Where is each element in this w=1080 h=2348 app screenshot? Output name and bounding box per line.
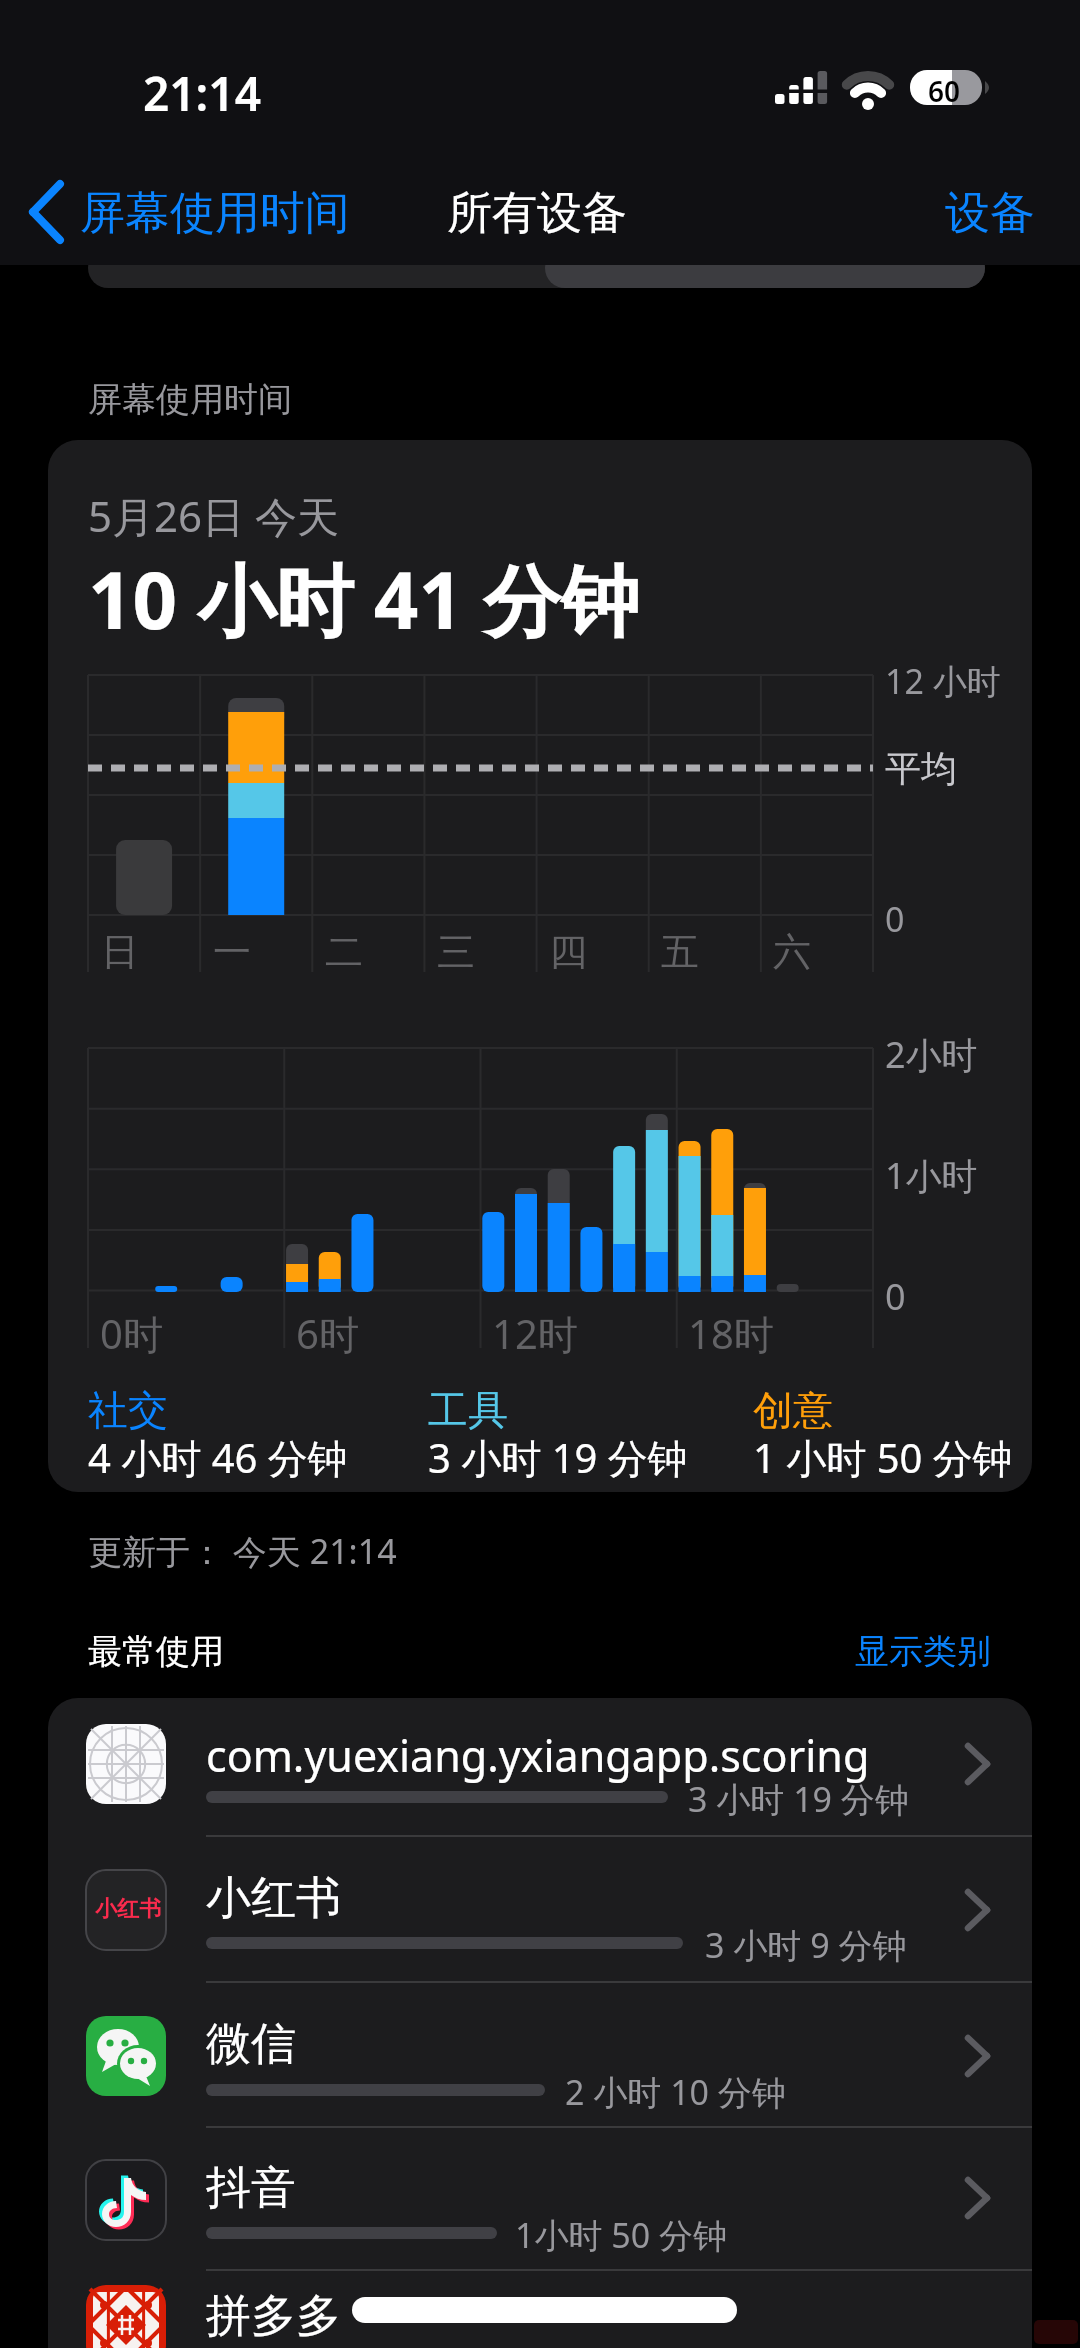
staticText: 12时 (492, 1306, 578, 1361)
button[interactable] (840, 1615, 1000, 1679)
staticText: 10 小时 41 分钟 (88, 546, 640, 653)
button[interactable] (930, 170, 1050, 250)
staticText: 小红书 (206, 1870, 341, 1927)
staticText: 5月26日 今天 (88, 487, 339, 544)
staticText: 屏幕使用时间 (80, 185, 350, 242)
staticText: 2 小时 10 分钟 (565, 2069, 786, 2115)
staticText: com.yuexiang.yxiangapp.scoring (206, 1726, 870, 1785)
staticText: 21:14 (143, 62, 261, 125)
staticText: 抖音 (206, 2160, 296, 2217)
staticText: 二 (325, 928, 363, 976)
staticText: 0时 (100, 1306, 163, 1361)
staticText: 3 小时 9 分钟 (705, 1922, 907, 1968)
button[interactable] (48, 1698, 1032, 1836)
button[interactable] (48, 1982, 1032, 2127)
staticText: 所有设备 (447, 185, 627, 242)
staticText: 6时 (296, 1306, 359, 1361)
staticText: 1小时 50 分钟 (515, 2212, 728, 2258)
staticText: 1 小时 50 分钟 (753, 1430, 1013, 1485)
staticText: 六 (773, 928, 811, 976)
staticText: 三 (437, 928, 475, 976)
staticText: 创意 (753, 1385, 833, 1435)
staticText: 日 (101, 928, 139, 976)
staticText: 一 (213, 928, 251, 976)
staticText: 2小时 (885, 1030, 978, 1079)
staticText: 四 (549, 928, 587, 976)
button[interactable] (48, 1836, 1032, 1982)
button[interactable] (20, 170, 360, 250)
staticText: 4 小时 46 分钟 (88, 1430, 348, 1485)
button[interactable] (48, 2127, 1032, 2270)
staticText: 更新于： 今天 21:14 (88, 1528, 397, 1574)
staticText: 18时 (688, 1306, 774, 1361)
staticText: 小红书 (95, 1895, 161, 1923)
staticText: 拼多多 (206, 2288, 341, 2345)
staticText: 12 小时 (885, 658, 1001, 704)
staticText: 3 小时 19 分钟 (688, 1776, 909, 1822)
staticText: 60 (928, 72, 961, 110)
staticText: 平均 (885, 746, 957, 791)
staticText: 五 (661, 928, 699, 976)
staticText: 3 小时 19 分钟 (428, 1430, 688, 1485)
staticText: 设备 (945, 185, 1035, 242)
staticText: 社交 (88, 1385, 168, 1435)
staticText: 工具 (428, 1385, 508, 1435)
staticText: 显示类别 (855, 1630, 991, 1673)
staticText: 1小时 (885, 1151, 978, 1200)
staticText: 屏幕使用时间 (88, 378, 292, 421)
button[interactable] (48, 2270, 1032, 2348)
staticText: 0 (885, 1272, 906, 1321)
staticText: 0 (885, 896, 905, 942)
staticText: 微信 (206, 2016, 296, 2073)
staticText: 最常使用 (88, 1630, 224, 1673)
